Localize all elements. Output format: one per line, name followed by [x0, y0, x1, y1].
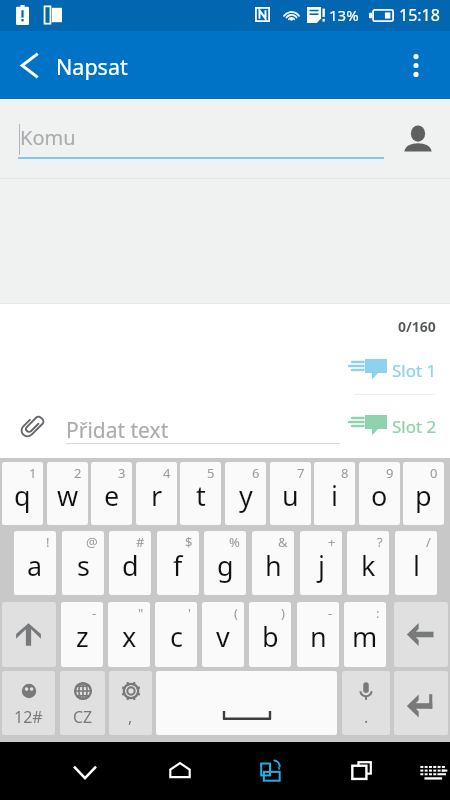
button[interactable]: 4: [136, 462, 177, 525]
staticText: 15:18: [399, 4, 440, 26]
staticText: Přidat text: [66, 416, 169, 445]
staticText: CZ: [73, 706, 93, 728]
button[interactable]: &: [252, 531, 294, 595]
staticText: 6: [252, 464, 260, 482]
staticText: f: [173, 547, 183, 584]
button[interactable]: (: [202, 602, 244, 667]
button[interactable]: +: [300, 531, 342, 595]
button[interactable]: Space: [156, 671, 337, 735]
staticText: :: [376, 604, 380, 622]
button[interactable]: 7: [270, 462, 311, 525]
button[interactable]: Symbols: [2, 671, 55, 735]
staticText: u: [282, 477, 299, 514]
button[interactable]: 1: [2, 462, 43, 525]
button[interactable]: /: [395, 531, 437, 595]
button[interactable]: Back: [3, 31, 55, 99]
button[interactable]: Keyboard: [405, 742, 450, 800]
button[interactable]: -: [297, 602, 339, 667]
staticText: t: [196, 477, 206, 514]
button[interactable]: ': [155, 602, 197, 667]
button[interactable]: Rotate screen: [243, 742, 297, 800]
staticText: z: [76, 618, 89, 655]
staticText: b: [262, 618, 279, 655]
staticText: @: [86, 533, 98, 551]
button[interactable]: ": [108, 602, 150, 667]
staticText: ?: [377, 533, 383, 551]
staticText: .: [364, 706, 369, 728]
button[interactable]: #: [109, 531, 151, 595]
button[interactable]: 2: [47, 462, 88, 525]
staticText: l: [413, 547, 420, 584]
button[interactable]: %: [204, 531, 246, 595]
staticText: Slot 2: [392, 415, 437, 438]
staticText: -: [328, 604, 333, 622]
staticText: 0/160: [398, 317, 436, 336]
staticText: q: [14, 477, 31, 514]
button[interactable]: Language: [60, 671, 105, 735]
staticText: +: [328, 533, 336, 551]
button[interactable]: Back: [58, 742, 112, 800]
button[interactable]: Shift: [2, 602, 56, 667]
staticText: g: [217, 547, 234, 584]
staticText: 1: [29, 464, 37, 482]
button[interactable]: 9: [359, 462, 400, 525]
staticText: 4: [163, 464, 171, 482]
staticText: !: [46, 533, 50, 551]
staticText: p: [415, 477, 432, 514]
staticText: 5: [207, 464, 215, 482]
button[interactable]: -: [61, 602, 103, 667]
button[interactable]: 6: [225, 462, 266, 525]
staticText: 8: [341, 464, 349, 482]
staticText: ,: [128, 706, 133, 728]
button[interactable]: Slot 1: [348, 349, 444, 393]
staticText: 12#: [14, 706, 43, 728]
button[interactable]: Pick contact: [398, 118, 438, 158]
staticText: r: [151, 477, 163, 514]
button[interactable]: $: [157, 531, 199, 595]
staticText: i: [331, 477, 338, 514]
button[interactable]: @: [62, 531, 104, 595]
button[interactable]: Recents: [335, 742, 389, 800]
staticText: h: [265, 547, 282, 584]
button[interactable]: :: [344, 602, 386, 667]
staticText: 9: [386, 464, 394, 482]
staticText: y: [239, 477, 253, 514]
button[interactable]: More options: [391, 31, 441, 99]
staticText: x: [122, 618, 137, 655]
staticText: (: [234, 604, 238, 622]
staticText: $: [185, 533, 193, 551]
staticText: /: [426, 533, 431, 551]
staticText: 3: [118, 464, 126, 482]
button[interactable]: 5: [180, 462, 221, 525]
button[interactable]: Attach: [12, 404, 54, 446]
staticText: Slot 1: [392, 359, 437, 382]
staticText: e: [104, 477, 120, 514]
staticText: c: [170, 618, 183, 655]
staticText: ): [281, 604, 285, 622]
staticText: d: [122, 547, 139, 584]
staticText: v: [216, 618, 230, 655]
button[interactable]: Settings: [109, 671, 152, 735]
staticText: k: [361, 547, 376, 584]
staticText: #: [136, 533, 145, 551]
staticText: n: [310, 618, 327, 655]
staticText: a: [27, 547, 43, 584]
button[interactable]: Home: [153, 742, 207, 800]
staticText: %: [229, 533, 240, 551]
button[interactable]: 8: [314, 462, 355, 525]
button[interactable]: ): [249, 602, 291, 667]
staticText: ": [138, 604, 144, 622]
staticText: -: [92, 604, 97, 622]
button[interactable]: Voice input: [342, 671, 390, 735]
button[interactable]: 3: [91, 462, 132, 525]
button[interactable]: Enter: [394, 671, 448, 735]
button[interactable]: Slot 2: [348, 405, 444, 449]
staticText: 0: [430, 464, 438, 482]
button[interactable]: 0: [403, 462, 444, 525]
staticText: j: [318, 547, 325, 584]
button[interactable]: ?: [347, 531, 389, 595]
staticText: Komu: [20, 124, 76, 151]
staticText: w: [57, 477, 79, 514]
button[interactable]: !: [14, 531, 56, 595]
button[interactable]: Backspace: [394, 602, 448, 667]
